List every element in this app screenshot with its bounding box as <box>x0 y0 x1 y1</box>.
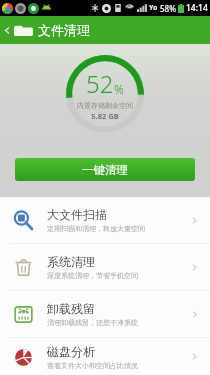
staticText: 58% <box>160 3 176 14</box>
staticText: 卸载残留 <box>47 301 95 316</box>
button[interactable]: 磁盘分析 <box>0 338 210 375</box>
staticText: Yo <box>149 3 158 13</box>
staticText: % <box>114 81 124 97</box>
staticText: 14:14 <box>186 2 208 14</box>
button[interactable]: 系统清理 <box>0 244 210 290</box>
staticText: 系统清理 <box>47 254 95 269</box>
staticText: 5.82 GB <box>91 111 119 121</box>
button[interactable]: 卸载残留 <box>0 291 210 337</box>
staticText: 内置存储剩余空间 <box>77 101 133 110</box>
staticText: 大文件扫描 <box>47 207 107 222</box>
staticText: 文件清理 <box>38 22 90 38</box>
button[interactable]: 一键清理 <box>15 158 195 181</box>
staticText: 52 <box>86 67 114 100</box>
staticText: 查看文件大小和空间占比情况 <box>47 361 138 370</box>
staticText: 深度系统清理，节省手机空间 <box>47 271 138 280</box>
staticText: 一键清理 <box>82 163 128 177</box>
staticText: 磁盘分析 <box>47 344 95 359</box>
staticText: 清理卸载残留，还您干净系统 <box>47 318 138 327</box>
staticText: 定期扫描和清理，释放大量空间 <box>47 224 145 233</box>
button[interactable]: 大文件扫描 <box>0 197 210 243</box>
button[interactable]: Back <box>0 16 14 44</box>
